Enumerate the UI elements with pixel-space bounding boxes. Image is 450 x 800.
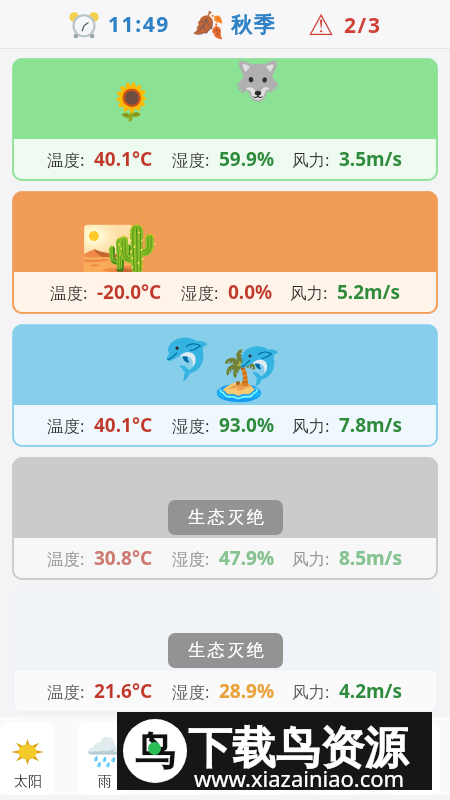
staticText: 风力: — [292, 414, 330, 437]
staticText: 鸟 — [135, 726, 175, 776]
staticText: 森林 — [322, 773, 350, 791]
staticText: 21.6°C — [94, 678, 153, 704]
button[interactable]: 生态灭绝 — [168, 500, 283, 535]
staticText: 5.2m/s — [337, 279, 401, 305]
staticText: 🌧️ — [86, 735, 123, 769]
staticText: 温度: — [47, 414, 85, 437]
button[interactable]: 太阳 — [0, 722, 55, 795]
staticText: 风力: — [292, 680, 330, 703]
staticText: 🌊 — [240, 735, 277, 769]
staticText: 湿度: — [172, 680, 210, 703]
button[interactable]: 生态灭绝 — [168, 633, 283, 668]
staticText: 30.8°C — [94, 545, 153, 571]
button[interactable]: 🏜️ — [12, 191, 438, 314]
button[interactable]: 生态灭绝 — [12, 457, 438, 580]
staticText: 🌻 — [109, 81, 154, 123]
button[interactable]: 11:49 — [68, 10, 170, 39]
button[interactable]: 🌧️ — [77, 722, 132, 795]
staticText: 温度: — [47, 148, 85, 171]
staticText: 温度: — [47, 547, 85, 570]
staticText: 40.1°C — [94, 146, 153, 172]
staticText: 风力: — [292, 148, 330, 171]
staticText: 沙漠 — [399, 773, 427, 791]
staticText: 海洋 — [245, 773, 273, 791]
button[interactable]: 🌻 — [12, 58, 438, 181]
staticText: 2/3 — [344, 11, 382, 40]
button[interactable]: 🐬 — [12, 324, 438, 447]
staticText: 🌲 — [317, 735, 354, 769]
staticText: 温度: — [50, 281, 88, 304]
staticText: 雪 — [175, 773, 189, 791]
staticText: 湿度: — [172, 148, 210, 171]
staticText: 太阳 — [14, 773, 42, 791]
staticText: 40.1°C — [94, 412, 153, 438]
button[interactable]: 🌲 — [308, 722, 363, 795]
staticText: 3.5m/s — [339, 146, 403, 172]
staticText: 🍂 — [192, 10, 225, 40]
staticText: 🌵 — [108, 221, 166, 275]
button[interactable]: 🌵 — [385, 722, 440, 795]
staticText: 🐬 — [236, 345, 283, 388]
staticText: 🐺 — [234, 59, 282, 104]
staticText: 7.8m/s — [339, 412, 403, 438]
staticText: 湿度: — [181, 281, 219, 304]
staticText: 28.9% — [219, 678, 275, 704]
staticText: 生态灭绝 — [187, 507, 265, 528]
staticText: www.xiazainiao.com — [194, 763, 405, 793]
button[interactable]: ⚠ — [308, 8, 382, 42]
staticText: -20.0°C — [97, 279, 162, 305]
staticText: 秋季 — [231, 12, 277, 38]
staticText: 湿度: — [172, 547, 210, 570]
staticText: 风力: — [292, 547, 330, 570]
staticText: 93.0% — [219, 412, 275, 438]
staticText: 4.2m/s — [339, 678, 403, 704]
staticText: ❄️ — [169, 735, 194, 769]
staticText: 湿度: — [172, 414, 210, 437]
button[interactable]: 🌊 — [231, 722, 286, 795]
staticText: 生态灭绝 — [187, 640, 265, 661]
staticText: 0.0% — [228, 279, 273, 305]
staticText: 🐬 — [162, 336, 212, 383]
staticText: 风力: — [290, 281, 328, 304]
staticText: 47.9% — [219, 545, 275, 571]
button[interactable]: 🍂 — [192, 10, 277, 40]
staticText: 下载鸟资源 — [188, 721, 408, 776]
staticText: 温度: — [47, 680, 85, 703]
button[interactable]: ❄️ — [154, 722, 209, 795]
staticText: 🏝️ — [209, 347, 269, 403]
staticText: ⚠ — [308, 8, 334, 42]
staticText: 雨 — [98, 773, 112, 791]
staticText: 8.5m/s — [339, 545, 403, 571]
staticText: 11:49 — [108, 10, 170, 39]
button[interactable]: 生态灭绝 — [12, 590, 438, 713]
staticText: 59.9% — [219, 146, 275, 172]
staticText: 🌵 — [394, 735, 431, 769]
staticText: 🏜️ — [81, 223, 136, 275]
